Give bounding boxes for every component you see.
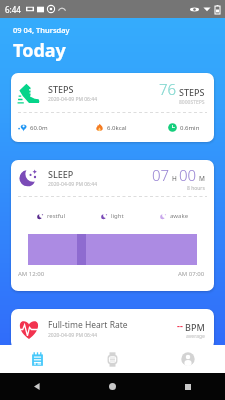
staticText: Full-time Heart Rate [48, 319, 128, 331]
staticText: average [186, 333, 205, 340]
staticText: 6.0kcal [107, 124, 127, 132]
staticText: 00 [179, 165, 197, 185]
staticText: Today [13, 38, 66, 63]
staticText: 8 hours [187, 185, 205, 192]
staticText: 76 [159, 79, 177, 99]
button[interactable]: Device [75, 345, 150, 373]
staticText: 6:44 [5, 4, 21, 15]
staticText: M [199, 174, 205, 183]
staticText: light [111, 212, 124, 220]
staticText: 8000STEPS [179, 99, 205, 106]
staticText: 2020-04-09 PM 06:44 [48, 332, 98, 339]
staticText: H [172, 174, 177, 183]
staticText: AM 12:00 [18, 270, 45, 278]
button[interactable]: Profile [150, 345, 225, 373]
staticText: 60.0m [30, 124, 48, 132]
button[interactable]: Recents [150, 373, 225, 400]
button[interactable]: Full-time Heart Rate [11, 309, 214, 349]
staticText: -- [177, 319, 183, 331]
staticText: awake [170, 212, 189, 220]
button[interactable]: SLEEP [11, 160, 214, 291]
staticText: 07 [152, 165, 170, 185]
staticText: 2020-04-09 PM 06:44 [48, 181, 98, 188]
staticText: 2020-04-09 PM 06:44 [48, 96, 98, 103]
staticText: BPM [185, 321, 205, 333]
staticText: STEPS [179, 86, 205, 98]
button[interactable]: Home [75, 373, 150, 400]
staticText: STEPS [48, 83, 74, 95]
staticText: AM 07:00 [178, 270, 205, 278]
button[interactable]: Back [0, 373, 75, 400]
button[interactable]: Records [0, 345, 75, 373]
staticText: restful [47, 212, 66, 220]
staticText: 0.6min [180, 124, 200, 132]
button[interactable]: STEPS [11, 73, 214, 142]
staticText: SLEEP [48, 168, 74, 180]
staticText: 09 04, Thursday [13, 25, 70, 35]
